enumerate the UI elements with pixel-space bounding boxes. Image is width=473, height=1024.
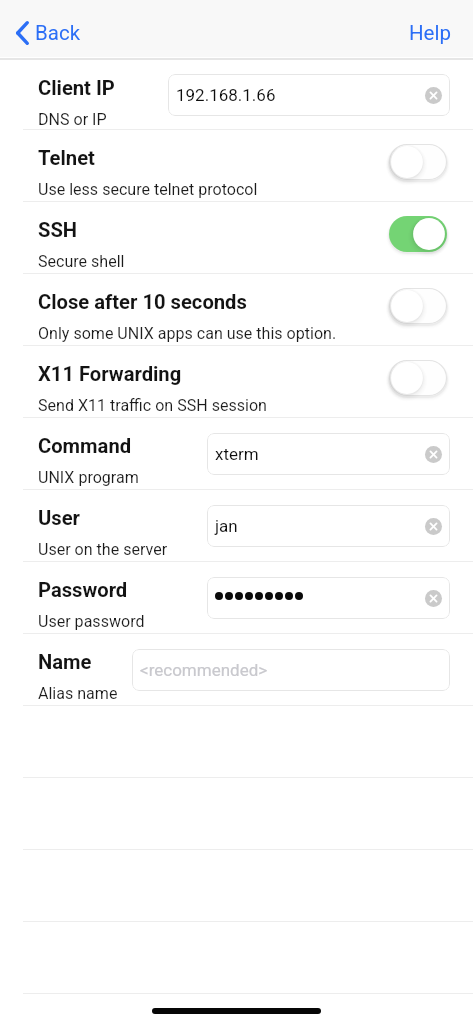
staticText: jan <box>215 516 238 536</box>
staticText: xterm <box>215 444 259 464</box>
button[interactable]: jan <box>207 505 450 547</box>
staticText: User password <box>38 612 145 631</box>
button[interactable]: X11 Forwarding <box>0 346 473 418</box>
button[interactable]: Clear text <box>425 446 442 463</box>
button[interactable]: Clear text <box>425 518 442 535</box>
button[interactable]: Switch off <box>389 144 447 180</box>
staticText: Only some UNIX apps can use this option. <box>38 324 337 343</box>
button[interactable]: Clear text <box>425 590 442 607</box>
staticText: Telnet <box>38 146 95 170</box>
staticText: Secure shell <box>38 252 125 271</box>
button[interactable]: Clear text <box>207 577 450 619</box>
staticText: X11 Forwarding <box>38 362 182 386</box>
button[interactable]: User <box>0 490 473 562</box>
button[interactable]: Switch off <box>389 288 447 324</box>
staticText: User <box>38 506 80 530</box>
staticText: User on the server <box>38 540 168 559</box>
staticText: UNIX program <box>38 468 139 487</box>
staticText: Help <box>409 21 451 45</box>
staticText: Command <box>38 434 132 458</box>
button[interactable]: Close after 10 seconds <box>0 274 473 346</box>
button[interactable]: Client IP <box>0 60 473 130</box>
button[interactable]: Name <box>0 634 473 706</box>
button[interactable]: Clear text <box>425 87 442 104</box>
staticText: SSH <box>38 218 78 242</box>
staticText: Name <box>38 650 92 674</box>
staticText: <recommended> <box>140 660 268 680</box>
button[interactable]: SSH <box>0 202 473 274</box>
staticText: Client IP <box>38 76 115 100</box>
staticText: Use less secure telnet protocol <box>38 180 258 199</box>
staticText: Send X11 traffic on SSH session <box>38 396 267 415</box>
staticText: DNS or IP <box>38 110 107 129</box>
button[interactable]: 192.168.1.66 <box>168 74 450 116</box>
staticText: Alias name <box>38 684 118 703</box>
button[interactable]: Telnet <box>0 130 473 202</box>
button[interactable]: <recommended> <box>132 649 450 691</box>
button[interactable]: Switch on <box>389 216 447 252</box>
staticText: Close after 10 seconds <box>38 290 247 314</box>
staticText: Back <box>35 21 81 45</box>
staticText: Password <box>38 578 128 602</box>
button[interactable]: Command <box>0 418 473 490</box>
staticText: 192.168.1.66 <box>176 85 276 105</box>
button[interactable]: Back <box>16 21 81 45</box>
button[interactable]: Help <box>409 21 451 45</box>
button[interactable]: xterm <box>207 433 450 475</box>
button[interactable]: Password <box>0 562 473 634</box>
button[interactable]: Switch off <box>389 360 447 396</box>
